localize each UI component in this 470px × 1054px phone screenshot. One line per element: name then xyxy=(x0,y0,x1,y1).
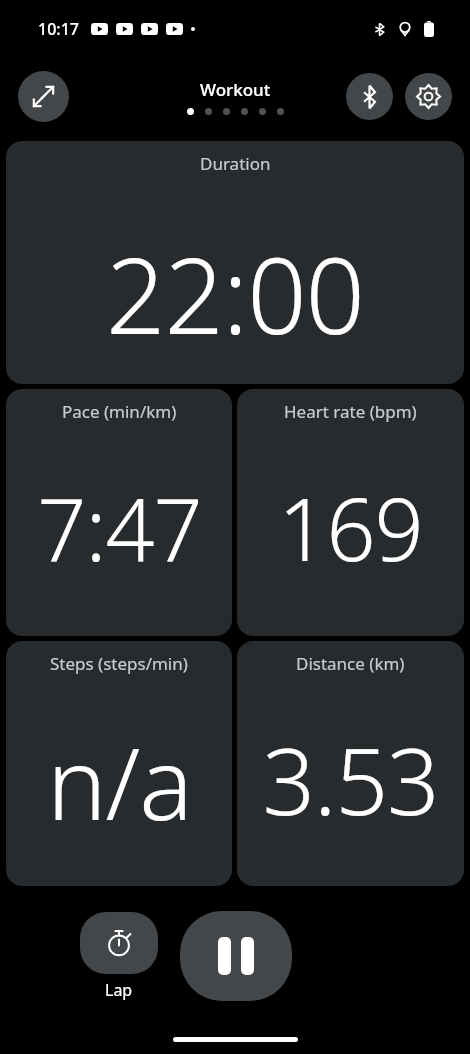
staticText: 10:17 xyxy=(38,18,79,40)
button[interactable]: Distance (km) xyxy=(237,641,464,886)
button[interactable]: Lap xyxy=(80,912,158,974)
button[interactable]: Duration xyxy=(6,141,464,384)
staticText: Pace (min/km) xyxy=(62,400,177,423)
staticText: Heart rate (bpm) xyxy=(284,400,417,423)
staticText: Lap xyxy=(105,979,133,1001)
staticText: Steps (steps/min) xyxy=(50,652,188,675)
button[interactable]: Expand xyxy=(18,71,69,122)
staticText: Workout xyxy=(200,78,271,101)
button[interactable]: Settings xyxy=(405,73,452,120)
button[interactable]: Pause xyxy=(180,911,292,1001)
staticText: Duration xyxy=(200,152,271,175)
staticText: 3.53 xyxy=(262,717,439,842)
button[interactable]: Bluetooth xyxy=(346,73,393,120)
staticText: n/a xyxy=(47,713,192,849)
staticText: 7:47 xyxy=(37,469,202,586)
button[interactable]: Pace (min/km) xyxy=(6,389,232,636)
button[interactable]: Steps (steps/min) xyxy=(6,641,232,886)
button[interactable]: Heart rate (bpm) xyxy=(237,389,464,636)
staticText: 22:00 xyxy=(106,223,364,365)
staticText: Distance (km) xyxy=(296,652,405,675)
staticText: 169 xyxy=(278,469,423,586)
